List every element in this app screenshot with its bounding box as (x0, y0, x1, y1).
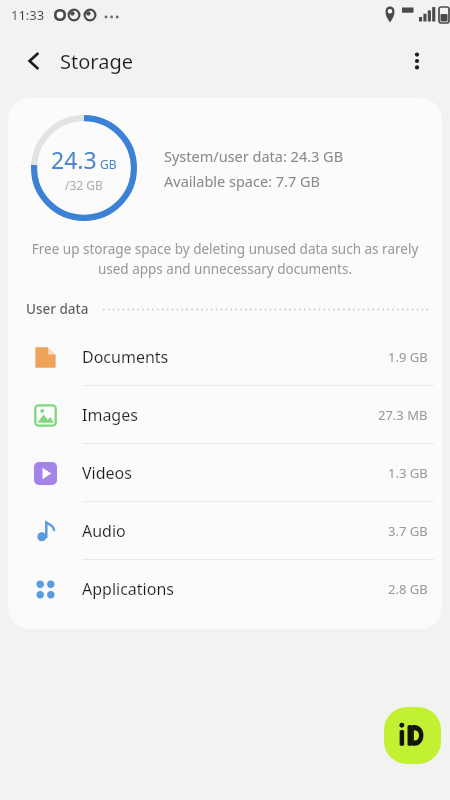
staticText: Audio (82, 520, 388, 542)
button[interactable]: Back (16, 43, 52, 79)
staticText: Images (82, 404, 378, 426)
staticText: Applications (82, 578, 388, 600)
staticText: /32 GB (65, 177, 103, 193)
staticText: Free up storage space by deleting unused… (24, 240, 426, 278)
staticText: 11:33 (11, 6, 45, 24)
button[interactable]: Images (8, 386, 442, 444)
button[interactable]: More options (398, 42, 436, 80)
staticText: GB (100, 156, 117, 172)
button[interactable]: Open iD assistant (384, 707, 441, 764)
button[interactable]: Audio (8, 502, 442, 560)
button[interactable]: Documents (8, 328, 442, 386)
button[interactable]: Applications (8, 560, 442, 617)
staticText: 1.9 GB (388, 348, 428, 366)
button[interactable]: Videos (8, 444, 442, 502)
staticText: 27.3 MB (378, 406, 428, 424)
staticText: Storage (60, 48, 133, 75)
staticText: 3.7 GB (388, 522, 428, 540)
staticText: System/user data: 24.3 GB (164, 146, 344, 166)
staticText: 2.8 GB (388, 580, 428, 598)
staticText: Videos (82, 462, 388, 484)
staticText: 1.3 GB (388, 464, 428, 482)
staticText: User data (26, 300, 89, 318)
staticText: 24.3 (51, 144, 97, 175)
staticText: Documents (82, 346, 388, 368)
staticText: Available space: 7.7 GB (164, 171, 321, 191)
